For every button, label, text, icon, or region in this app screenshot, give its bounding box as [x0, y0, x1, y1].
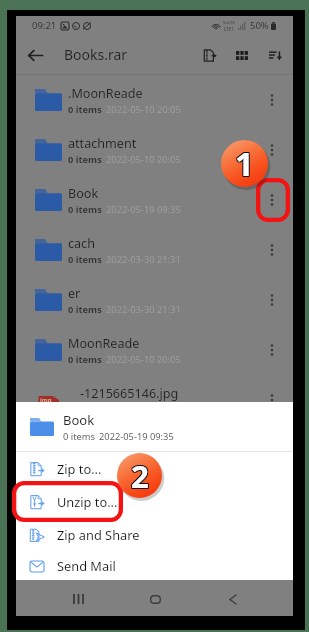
staticText: 1	[236, 140, 255, 185]
button[interactable]: More options	[255, 233, 289, 267]
staticText: 1	[235, 141, 254, 186]
staticText: 2022-05-10 20:05	[106, 103, 181, 116]
staticText: 2	[130, 454, 148, 496]
staticText: LTE1	[224, 26, 235, 32]
staticText: Zip to...	[57, 460, 102, 477]
staticText: 2022-05-10 20:05	[106, 353, 181, 366]
button[interactable]: er	[16, 275, 293, 325]
button[interactable]: More options	[255, 83, 289, 117]
staticText: 0 items	[68, 153, 102, 166]
staticText: 2	[132, 455, 150, 497]
button[interactable]: Back	[16, 36, 54, 74]
staticText: Unzip to...	[57, 493, 118, 510]
button[interactable]: Zip to...	[16, 452, 293, 485]
staticText: 0 items	[68, 203, 102, 216]
staticText: 2022-05-10 20:05	[106, 153, 181, 166]
button[interactable]: More options	[255, 333, 289, 367]
staticText: cach	[68, 235, 95, 252]
button[interactable]: .MoonReade	[16, 75, 293, 125]
button[interactable]: img	[16, 375, 293, 425]
staticText: 1	[234, 142, 253, 187]
button[interactable]: Unzip to...	[16, 485, 293, 518]
staticText: Book	[63, 411, 95, 429]
staticText: attachment	[68, 135, 137, 152]
button[interactable]: More options	[255, 383, 289, 417]
button[interactable]: Back	[211, 580, 255, 616]
staticText: 0 items	[68, 103, 102, 116]
staticText: 1	[236, 142, 255, 187]
staticText: er	[68, 285, 81, 302]
staticText: 2	[130, 455, 148, 497]
button[interactable]: More options	[255, 283, 289, 317]
staticText: Send Mail	[57, 557, 116, 574]
button[interactable]: MoonReade	[16, 325, 293, 375]
button[interactable]: Sort	[259, 39, 291, 71]
button[interactable]: Zip and Share	[16, 518, 293, 551]
staticText: Book	[68, 185, 99, 202]
button[interactable]: attachment	[16, 125, 293, 175]
button[interactable]: Extract archive	[193, 39, 225, 71]
staticText: 2022-05-19 09:35	[99, 430, 174, 443]
staticText: img	[40, 396, 52, 404]
staticText: 09:21	[32, 19, 57, 32]
button[interactable]: More options	[255, 133, 289, 167]
staticText: 2	[132, 456, 150, 498]
staticText: 0 items	[63, 430, 95, 443]
staticText: Zip and Share	[57, 526, 140, 543]
staticText: VoLTE	[223, 20, 235, 26]
staticText: 2	[131, 456, 149, 498]
staticText: 2	[132, 454, 150, 496]
staticText: 50%	[250, 19, 269, 32]
staticText: -1215665146.jpg	[80, 385, 179, 402]
staticText: 0 items	[68, 353, 102, 366]
button[interactable]: Send Mail	[16, 551, 293, 580]
button[interactable]: Book	[16, 175, 293, 225]
staticText: 2022-03-30 21:31	[106, 253, 181, 266]
staticText: 1	[234, 141, 253, 186]
button[interactable]: Grid view	[226, 39, 258, 71]
staticText: 1	[236, 141, 255, 186]
staticText: Books.rar	[64, 45, 128, 64]
staticText: 2	[130, 456, 148, 498]
staticText: 2022-03-30 21:31	[106, 303, 181, 316]
staticText: 2	[131, 455, 149, 497]
staticText: .MoonReade	[68, 85, 143, 102]
staticText: 0 items	[68, 303, 102, 316]
staticText: MoonReade	[68, 335, 140, 352]
staticText: 0 items	[68, 253, 102, 266]
button[interactable]: More options	[255, 183, 289, 217]
staticText: 1	[235, 142, 254, 187]
button[interactable]: Home	[133, 580, 177, 616]
button[interactable]: cach	[16, 225, 293, 275]
staticText: 2	[131, 454, 149, 496]
staticText: 1	[235, 140, 254, 185]
button[interactable]: Recents	[56, 580, 100, 616]
staticText: 1	[234, 140, 253, 185]
staticText: 2022-05-19 09:35	[106, 203, 181, 216]
